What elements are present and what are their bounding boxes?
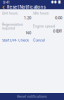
button[interactable]: Back (2, 4, 5, 10)
button[interactable]: Start DPF Check (2, 38, 31, 42)
staticText: Reset notifications (17, 94, 47, 99)
button[interactable]: Cancel (33, 38, 62, 42)
staticText: 1.20 (24, 16, 31, 20)
staticText: ‹ (2, 3, 5, 11)
staticText: Unit hours (2, 11, 18, 15)
staticText: Idle hours (33, 11, 49, 15)
staticText: 9:41 (3, 0, 9, 5)
staticText: Engine speed (33, 25, 55, 28)
staticText: No (26, 31, 31, 35)
staticText: Regeneration required (2, 23, 23, 30)
staticText: 0 rpm (53, 29, 62, 33)
staticText: Start DPF Check (2, 38, 29, 42)
staticText: Reset Notifications (6, 5, 45, 10)
staticText: Cancel (33, 38, 45, 42)
staticText: ●● ■ (51, 1, 61, 4)
staticText: 0.00 (55, 16, 62, 20)
